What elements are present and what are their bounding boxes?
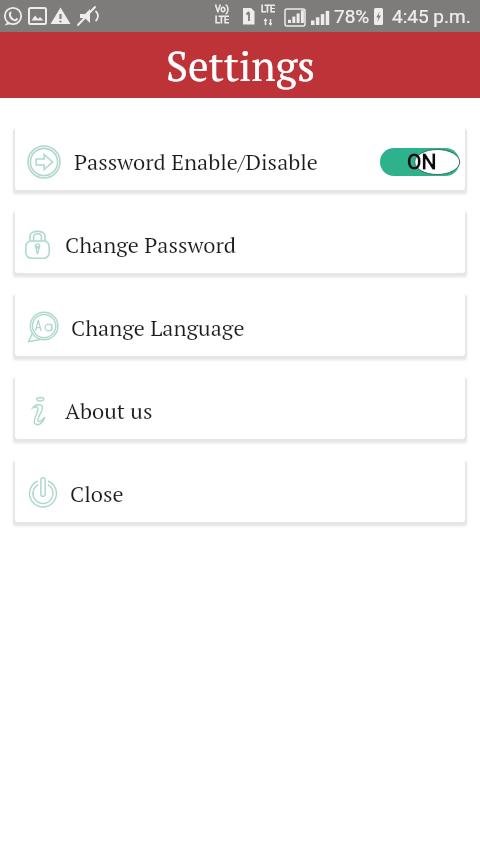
staticText: Change Language <box>71 313 245 342</box>
button[interactable]: About us <box>15 376 465 439</box>
staticText: About us <box>65 396 153 425</box>
staticText: LTE <box>215 15 230 26</box>
button[interactable]: Change Password <box>15 210 465 273</box>
staticText: 4:45 p.m. <box>392 5 471 27</box>
staticText: 78% <box>334 5 370 27</box>
button[interactable]: Password Enable/Disable <box>15 127 465 190</box>
button[interactable]: Close <box>15 459 465 522</box>
staticText: Close <box>70 479 124 508</box>
button[interactable]: Change Language <box>15 293 465 356</box>
staticText: Password Enable/Disable <box>74 147 318 176</box>
staticText: ON <box>407 150 437 175</box>
button[interactable]: Password enable toggle, on <box>380 148 460 176</box>
staticText: Change Password <box>65 230 237 259</box>
staticText: Settings <box>166 38 315 92</box>
staticText: Vo) <box>215 4 229 15</box>
staticText: LTE <box>261 4 276 15</box>
